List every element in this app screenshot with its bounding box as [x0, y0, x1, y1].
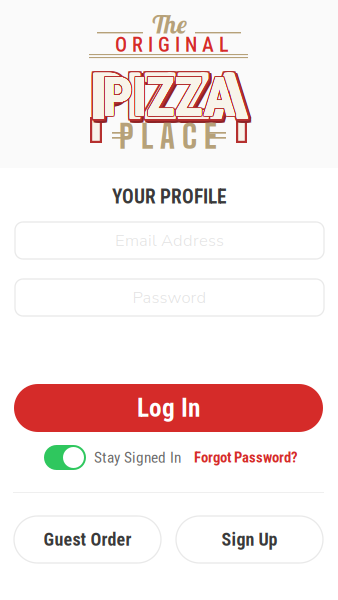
staticText: PIZZA: [91, 61, 248, 134]
staticText: PIZZA: [102, 66, 235, 128]
staticText: PIZZA: [102, 66, 235, 128]
staticText: PIZZA: [102, 66, 235, 128]
staticText: PIZZA: [102, 66, 235, 128]
button[interactable]: Log In: [14, 384, 323, 432]
button[interactable]: Guest Order: [14, 516, 161, 563]
button[interactable]: Stay Signed In: [44, 445, 176, 470]
staticText: PIZZA: [92, 62, 249, 136]
staticText: PIZZA: [90, 60, 247, 133]
staticText: PIZZA: [101, 67, 234, 129]
button[interactable]: Sign Up: [176, 516, 323, 563]
staticText: PIZZA: [90, 60, 247, 134]
staticText: PIZZA: [102, 66, 235, 128]
staticText: PIZZA: [101, 65, 234, 127]
staticText: PIZZA: [102, 66, 235, 128]
staticText: PIZZA: [88, 59, 245, 133]
staticText: Log In: [137, 393, 200, 423]
staticText: PIZZA: [90, 61, 247, 134]
staticText: PIZZA: [91, 60, 248, 134]
staticText: PIZZA: [102, 66, 235, 128]
staticText: Guest Order: [43, 529, 131, 550]
staticText: PIZZA: [102, 66, 235, 128]
staticText: PIZZA: [90, 60, 247, 133]
staticText: PIZZA: [93, 64, 250, 138]
staticText: PIZZA: [102, 66, 235, 128]
staticText: Stay Signed In: [94, 448, 181, 466]
staticText: PIZZA: [90, 61, 247, 134]
staticText: PIZZA: [92, 61, 249, 135]
staticText: PIZZA: [91, 60, 248, 133]
staticText: PIZZA: [91, 60, 248, 133]
staticText: PIZZA: [102, 66, 235, 128]
staticText: PIZZA: [102, 66, 235, 128]
staticText: PIZZA: [91, 62, 248, 135]
staticText: PIZZA: [91, 61, 248, 134]
staticText: PIZZA: [102, 66, 235, 128]
staticText: PIZZA: [91, 61, 248, 134]
staticText: PIZZA: [102, 65, 235, 127]
staticText: Email Address: [115, 229, 224, 252]
staticText: PIZZA: [104, 66, 237, 129]
staticText: PIZZA: [90, 61, 247, 134]
staticText: YOUR PROFILE: [112, 186, 226, 208]
staticText: PIZZA: [93, 61, 250, 135]
staticText: PIZZA: [101, 66, 234, 129]
staticText: PIZZA: [103, 66, 236, 129]
staticText: PIZZA: [90, 63, 247, 137]
staticText: O R I G I N A L: [115, 33, 229, 57]
staticText: PIZZA: [102, 66, 235, 128]
staticText: PIZZA: [88, 58, 245, 131]
staticText: PIZZA: [102, 66, 235, 128]
staticText: PIZZA: [90, 61, 247, 134]
staticText: PIZZA: [88, 61, 245, 135]
staticText: PIZZA: [93, 60, 250, 134]
staticText: PIZZA: [102, 66, 235, 128]
button[interactable]: Forgot Password?: [194, 445, 298, 470]
staticText: PIZZA: [102, 66, 235, 129]
staticText: PIZZA: [102, 65, 235, 128]
staticText: PIZZA: [90, 60, 247, 134]
staticText: PIZZA: [91, 61, 248, 134]
staticText: PIZZA: [89, 59, 246, 133]
staticText: PIZZA: [91, 64, 248, 138]
staticText: PIZZA: [93, 62, 250, 135]
staticText: Sign Up: [221, 529, 277, 550]
staticText: PIZZA: [102, 67, 235, 129]
staticText: PIZZA: [103, 65, 236, 127]
staticText: PIZZA: [89, 62, 246, 136]
staticText: PIZZA: [91, 60, 248, 133]
staticText: PIZZA: [91, 60, 248, 133]
staticText: PIZZA: [94, 61, 251, 134]
staticText: PIZZA: [91, 61, 248, 134]
staticText: PIZZA: [90, 59, 247, 133]
staticText: PIZZA: [94, 60, 251, 133]
staticText: PIZZA: [92, 64, 249, 138]
staticText: PIZZA: [88, 60, 245, 134]
staticText: PIZZA: [92, 63, 249, 137]
staticText: PIZZA: [92, 60, 249, 134]
staticText: PIZZA: [102, 66, 235, 128]
staticText: PIZZA: [104, 65, 237, 128]
staticText: PIZZA: [90, 60, 247, 133]
staticText: Forgot Password?: [194, 449, 298, 466]
staticText: PIZZA: [90, 58, 247, 131]
staticText: The: [151, 8, 187, 40]
staticText: PIZZA: [91, 60, 248, 134]
staticText: PIZZA: [93, 63, 250, 137]
staticText: PIZZA: [89, 58, 246, 131]
staticText: PIZZA: [102, 66, 235, 128]
staticText: PIZZA: [90, 61, 247, 134]
staticText: PIZZA: [93, 61, 250, 134]
staticText: PIZZA: [102, 66, 235, 128]
staticText: PIZZA: [90, 60, 247, 133]
staticText: PIZZA: [90, 61, 247, 134]
staticText: PIZZA: [102, 66, 235, 128]
staticText: PIZZA: [90, 60, 247, 134]
staticText: PIZZA: [90, 60, 247, 133]
staticText: PIZZA: [102, 66, 235, 128]
staticText: PIZZA: [102, 66, 235, 128]
staticText: PIZZA: [91, 63, 248, 137]
staticText: PIZZA: [102, 66, 235, 128]
staticText: PIZZA: [90, 61, 247, 135]
staticText: PIZZA: [101, 65, 234, 128]
